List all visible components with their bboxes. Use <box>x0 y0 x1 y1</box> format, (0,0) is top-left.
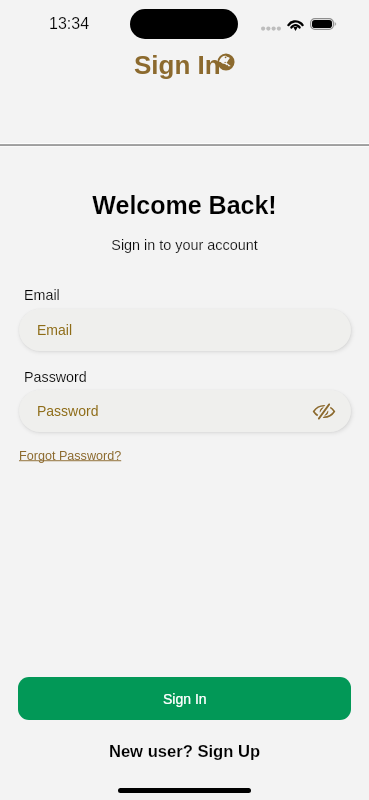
staticText: Password <box>24 369 87 385</box>
staticText: Welcome Back! <box>0 191 369 219</box>
staticText: Sign In <box>134 50 221 79</box>
staticText: Sign in to your account <box>0 237 369 253</box>
button[interactable]: Forgot Password? <box>19 449 122 463</box>
staticText: Email <box>37 322 73 338</box>
button[interactable]: Email <box>19 309 351 351</box>
button[interactable]: New user? Sign Up <box>0 742 369 761</box>
button[interactable]: Show password <box>311 400 337 422</box>
staticText: Email <box>24 287 60 303</box>
staticText: 13:34 <box>49 15 90 33</box>
staticText: Password <box>37 403 99 419</box>
staticText: Sign In <box>163 691 207 707</box>
button[interactable]: Password <box>19 390 351 432</box>
button[interactable]: Sign In <box>18 677 351 720</box>
